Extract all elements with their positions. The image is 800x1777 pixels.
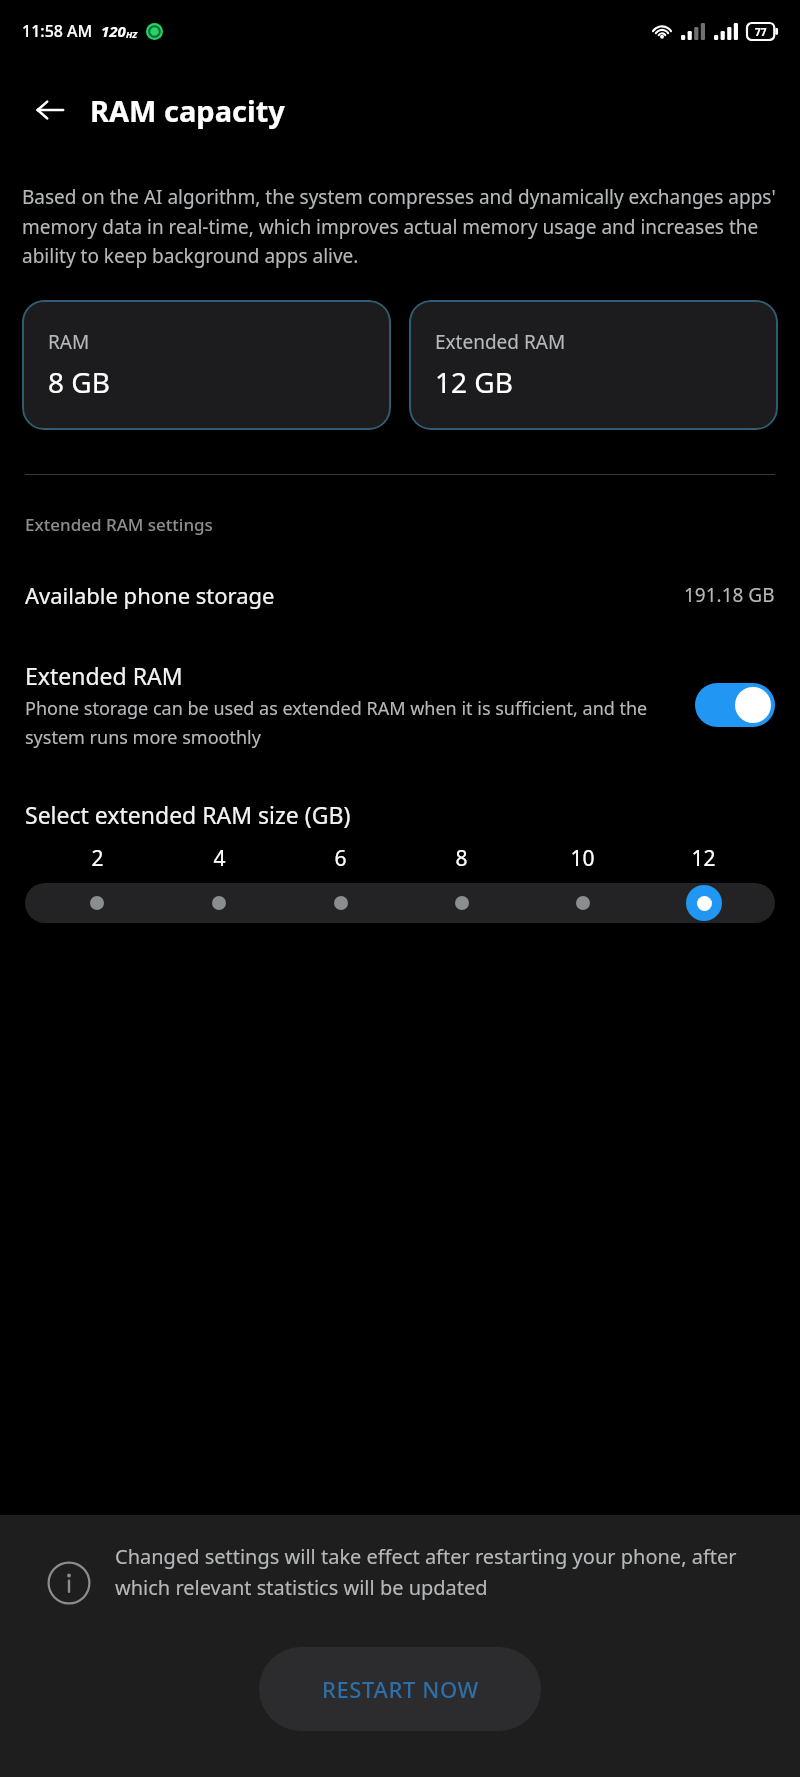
button[interactable]: Available phone storage [0,572,800,618]
button[interactable]: Back [22,82,78,138]
staticText: Available phone storage [25,580,275,610]
staticText: 12 GB [435,363,513,401]
button[interactable]: RESTART NOW [259,1647,541,1731]
staticText: Changed settings will take effect after … [115,1543,775,1601]
staticText: 8 [455,844,468,873]
staticText: RAM [48,329,90,355]
button[interactable]: Extended RAM [409,300,778,430]
staticText: RAM capacity [90,91,285,130]
staticText: Extended RAM [25,660,183,691]
button[interactable]: RAM [22,300,391,430]
staticText: Select extended RAM size (GB) [25,799,351,830]
staticText: 8 GB [48,363,110,401]
staticText: 77 [755,25,767,39]
staticText: 10 [570,844,595,873]
staticText: 11:58 AM [22,20,93,42]
staticText: Phone storage can be used as extended RA… [25,696,677,749]
staticText: Extended RAM settings [25,513,213,536]
button[interactable]: Extended RAM [0,660,800,749]
staticText: 191.18 GB [684,582,775,608]
staticText: Extended RAM [435,329,566,355]
staticText: 4 [213,844,226,873]
staticText: 120 [101,21,126,41]
staticText: 12 [691,844,716,873]
staticText: Based on the AI algorithm, the system co… [22,184,778,268]
staticText: HZ [126,28,138,40]
staticText: 2 [91,844,104,873]
button[interactable]: Extended RAM size slider [25,883,775,923]
staticText: RESTART NOW [322,1674,479,1704]
staticText: 6 [334,844,347,873]
other: Extended RAM toggle [695,683,775,727]
